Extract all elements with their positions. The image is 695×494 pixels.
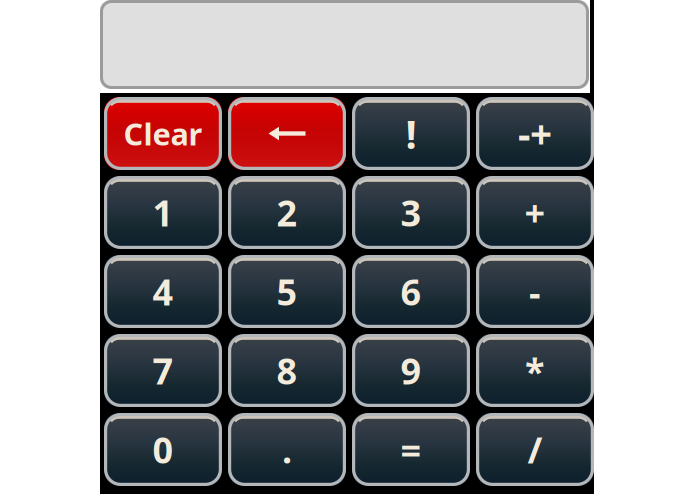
button[interactable]: 3 (348, 172, 472, 251)
staticText: 1 (152, 189, 173, 236)
staticText: 7 (152, 347, 173, 394)
button[interactable]: 5 (224, 251, 348, 330)
button[interactable]: 0 (100, 409, 224, 488)
button[interactable]: = (348, 409, 472, 488)
staticText: 6 (400, 268, 421, 315)
staticText: 8 (276, 347, 297, 394)
button[interactable]: Clear (100, 93, 224, 172)
button[interactable]: / (472, 409, 594, 488)
staticText: 4 (152, 268, 173, 315)
button[interactable]: 9 (348, 330, 472, 409)
button[interactable]: * (472, 330, 594, 409)
button[interactable]: 8 (224, 330, 348, 409)
staticText: 9 (400, 347, 421, 394)
button[interactable]: - (472, 251, 594, 330)
staticText: * (525, 347, 545, 394)
button[interactable]: ! (348, 93, 472, 172)
staticText: Clear (123, 113, 202, 154)
button[interactable]: 4 (100, 251, 224, 330)
button[interactable]: 6 (348, 251, 472, 330)
button[interactable]: 2 (224, 172, 348, 251)
staticText: . (282, 426, 292, 473)
staticText: 2 (276, 189, 297, 236)
staticText: ! (405, 107, 416, 160)
staticText: 0 (152, 426, 173, 473)
staticText: = (400, 426, 421, 473)
staticText: + (524, 189, 545, 236)
staticText: -+ (518, 108, 552, 159)
button[interactable]: + (472, 172, 594, 251)
staticText: 3 (400, 189, 421, 236)
button[interactable]: 7 (100, 330, 224, 409)
button[interactable]: 1 (100, 172, 224, 251)
staticText: / (527, 426, 542, 473)
staticText: - (529, 268, 541, 315)
button[interactable]: . (224, 409, 348, 488)
button[interactable]: -+ (472, 93, 594, 172)
staticText: 5 (276, 268, 297, 315)
button[interactable]: Backspace (224, 93, 348, 172)
